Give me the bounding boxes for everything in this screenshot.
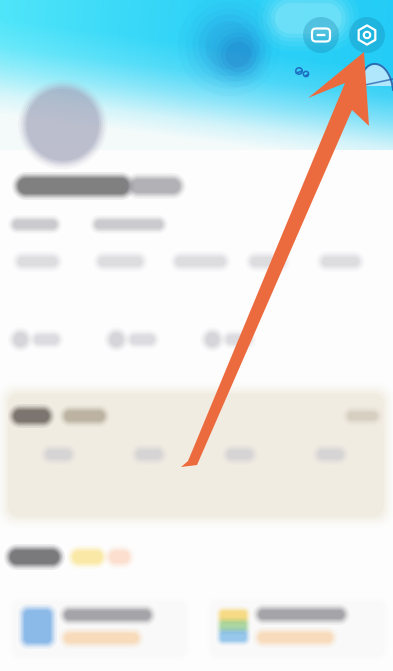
button[interactable]: Item	[40, 444, 77, 465]
button[interactable]: Item	[312, 444, 349, 465]
button[interactable]: Item	[221, 444, 258, 465]
button[interactable]: Menu item	[8, 327, 64, 352]
button[interactable]: Scan	[303, 17, 339, 53]
button[interactable]: Item	[170, 251, 231, 272]
button[interactable]: Item	[131, 444, 168, 465]
button[interactable]: Feature card	[202, 592, 392, 664]
button[interactable]: Feature card	[4, 592, 194, 664]
button[interactable]: Item	[93, 251, 148, 272]
button[interactable]: Settings	[349, 17, 385, 53]
button[interactable]: Menu item	[104, 327, 160, 352]
button[interactable]: Item	[316, 251, 365, 272]
button[interactable]: Item	[12, 251, 63, 272]
button[interactable]: Menu item	[200, 327, 256, 352]
button[interactable]: Item	[245, 251, 290, 272]
button[interactable]: Profile photo	[18, 80, 107, 169]
